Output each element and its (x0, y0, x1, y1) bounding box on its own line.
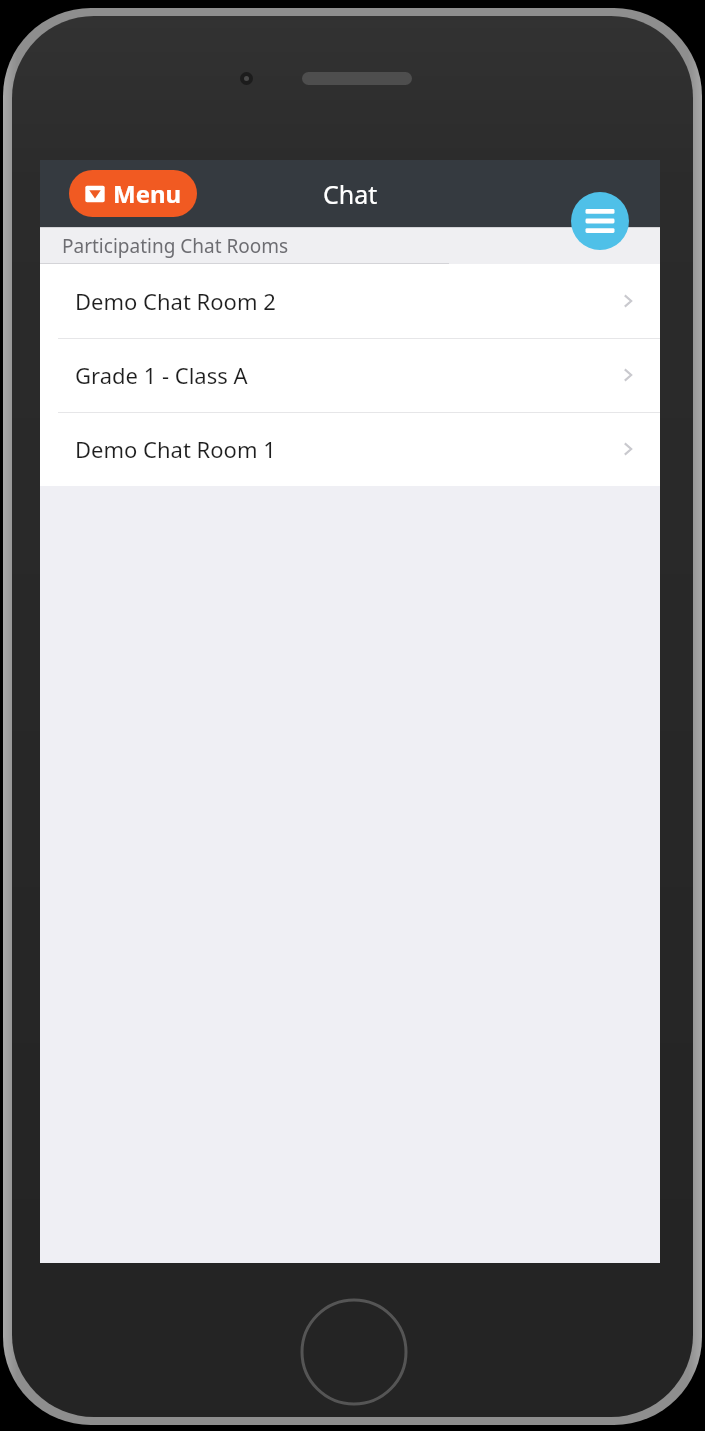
button[interactable]: Grade 1 - Class A (40, 338, 660, 412)
staticText: Chat (323, 177, 378, 211)
staticText: Grade 1 - Class A (75, 360, 248, 390)
button[interactable]: Demo Chat Room 2 (40, 264, 660, 338)
staticText: Demo Chat Room 2 (75, 286, 276, 316)
button[interactable]: Menu (69, 170, 197, 217)
staticText: Demo Chat Room 1 (75, 434, 276, 464)
staticText: Participating Chat Rooms (62, 233, 289, 259)
staticText: Menu (113, 177, 182, 210)
button[interactable]: Demo Chat Room 1 (40, 412, 660, 486)
button[interactable]: Open navigation menu (571, 192, 629, 250)
